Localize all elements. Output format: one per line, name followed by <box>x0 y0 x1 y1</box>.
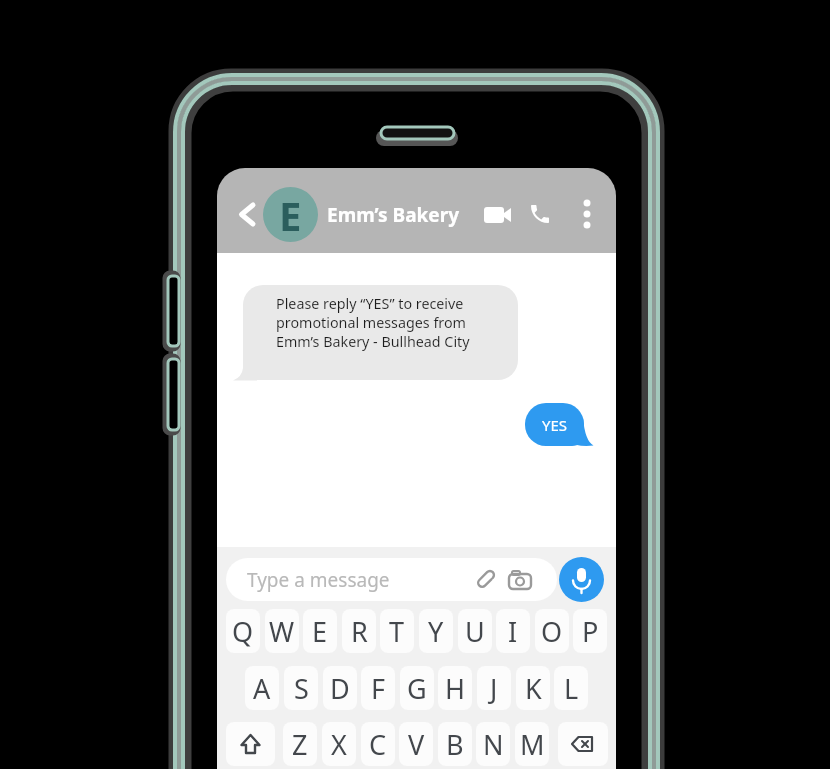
button[interactable]: X <box>322 722 356 766</box>
button[interactable] <box>559 557 604 602</box>
staticText: O <box>541 613 563 650</box>
staticText: J <box>490 670 498 707</box>
staticText: A <box>253 670 271 707</box>
staticText: S <box>294 670 309 707</box>
staticText: W <box>269 613 295 650</box>
staticText: C <box>369 726 387 763</box>
staticText: Please reply “YES” to receive promotiona… <box>276 294 470 351</box>
staticText: R <box>351 613 368 650</box>
button[interactable]: F <box>361 666 395 710</box>
button[interactable]: Y <box>419 609 453 653</box>
button[interactable]: S <box>284 666 318 710</box>
button[interactable]: Q <box>226 609 260 653</box>
button[interactable]: I <box>496 609 530 653</box>
staticText: Q <box>232 613 254 650</box>
staticText: Z <box>292 726 308 763</box>
button[interactable] <box>226 722 275 766</box>
button[interactable] <box>233 198 259 228</box>
button[interactable]: C <box>361 722 395 766</box>
button[interactable]: L <box>554 666 588 710</box>
staticText: G <box>407 670 427 707</box>
button[interactable]: D <box>323 666 357 710</box>
staticText: E <box>312 613 328 650</box>
staticText: Y <box>428 613 444 650</box>
button[interactable] <box>480 205 514 227</box>
button[interactable]: G <box>400 666 434 710</box>
button[interactable]: R <box>342 609 376 653</box>
button[interactable]: B <box>438 722 472 766</box>
staticText: N <box>483 726 504 763</box>
staticText: D <box>330 670 350 707</box>
button[interactable]: U <box>458 609 492 653</box>
button[interactable]: Z <box>283 722 317 766</box>
button[interactable]: P <box>573 609 607 653</box>
staticText: X <box>331 726 347 763</box>
staticText: U <box>465 613 485 650</box>
button[interactable]: E <box>303 609 337 653</box>
staticText: H <box>445 670 466 707</box>
button[interactable] <box>528 202 554 226</box>
staticText: E <box>279 188 302 242</box>
staticText: YES <box>542 415 568 435</box>
button[interactable] <box>577 198 597 230</box>
button[interactable]: O <box>535 609 569 653</box>
button[interactable]: K <box>516 666 550 710</box>
button[interactable]: Type a message <box>226 558 557 601</box>
button[interactable]: N <box>476 722 510 766</box>
button[interactable] <box>558 722 608 766</box>
staticText: I <box>508 613 518 650</box>
staticText: L <box>564 670 579 707</box>
button[interactable]: M <box>515 722 549 766</box>
staticText: M <box>520 726 545 763</box>
button[interactable]: W <box>265 609 299 653</box>
staticText: T <box>389 613 405 650</box>
button[interactable]: H <box>438 666 472 710</box>
staticText: Emm’s Bakery <box>327 202 460 228</box>
button[interactable]: E <box>263 187 318 242</box>
staticText: B <box>446 726 464 763</box>
staticText: V <box>408 726 425 763</box>
staticText: Type a message <box>247 567 390 593</box>
button[interactable]: T <box>380 609 414 653</box>
button[interactable]: V <box>399 722 433 766</box>
staticText: K <box>525 670 542 707</box>
staticText: F <box>371 670 386 707</box>
button[interactable]: A <box>245 666 279 710</box>
staticText: P <box>582 613 599 650</box>
button[interactable]: J <box>477 666 511 710</box>
button[interactable]: YES <box>525 403 584 446</box>
